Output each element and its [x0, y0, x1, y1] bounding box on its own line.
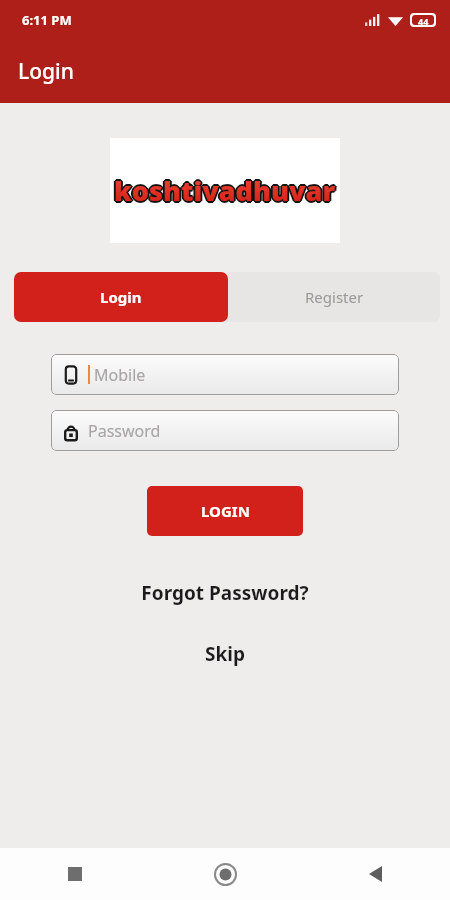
staticText: koshtivadhuvar: [115, 173, 337, 210]
staticText: Mobile: [94, 364, 146, 386]
button[interactable]: Skip: [189, 637, 261, 671]
button[interactable]: Password: [51, 410, 399, 451]
button[interactable]: Recent apps: [0, 848, 150, 900]
staticText: koshtivadhuvar: [113, 171, 335, 208]
staticText: Login: [100, 287, 142, 307]
staticText: Forgot Password?: [141, 580, 309, 606]
staticText: Register: [305, 287, 364, 307]
button[interactable]: Login: [14, 272, 228, 322]
staticText: koshtivadhuvar: [113, 173, 335, 210]
staticText: Password: [88, 420, 161, 442]
staticText: 44: [418, 15, 429, 25]
button[interactable]: Register: [228, 272, 440, 322]
staticText: Login: [18, 57, 74, 86]
staticText: koshtivadhuvar: [116, 172, 338, 209]
button[interactable]: Home: [150, 848, 300, 900]
staticText: LOGIN: [201, 501, 250, 521]
button[interactable]: Mobile: [51, 354, 399, 395]
staticText: koshtivadhuvar: [115, 171, 337, 208]
staticText: koshtivadhuvar: [112, 172, 334, 209]
staticText: koshtivadhuvar: [114, 174, 336, 211]
staticText: koshtivadhuvar: [114, 170, 336, 207]
staticText: Skip: [205, 641, 245, 667]
button[interactable]: LOGIN: [147, 486, 303, 536]
staticText: 6:11 PM: [22, 11, 72, 29]
button[interactable]: Forgot Password?: [129, 576, 321, 610]
staticText: koshtivadhuvar: [114, 172, 336, 209]
button[interactable]: Back: [300, 848, 450, 900]
